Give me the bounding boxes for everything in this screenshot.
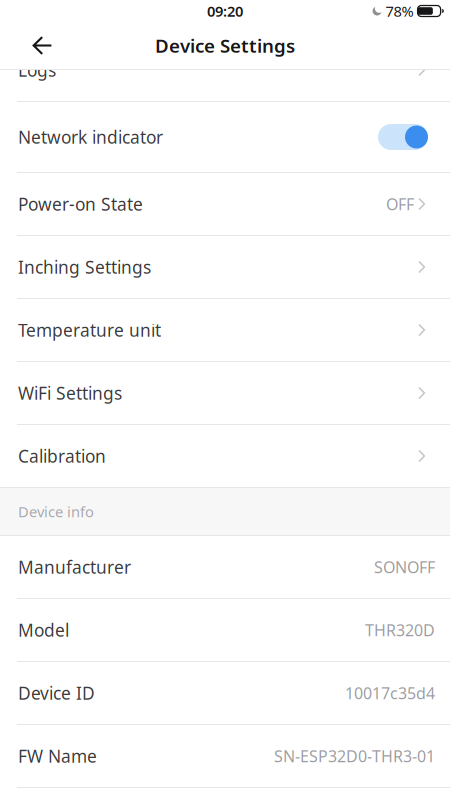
button[interactable]: Inching Settings — [0, 236, 450, 298]
staticText: OFF — [386, 193, 414, 215]
button[interactable]: Temperature unit — [0, 299, 450, 361]
staticText: THR320D — [365, 619, 435, 641]
staticText: Device info — [18, 502, 94, 521]
button[interactable]: Power-on State — [0, 173, 450, 235]
staticText: 78% — [386, 1, 414, 21]
staticText: 10017c35d4 — [345, 682, 435, 704]
staticText: Device ID — [18, 681, 95, 704]
staticText: Network indicator — [18, 125, 163, 148]
staticText: Logs — [18, 58, 56, 81]
staticText: Power-on State — [18, 192, 143, 215]
staticText: WiFi Settings — [18, 381, 122, 404]
staticText: 09:20 — [207, 1, 243, 21]
staticText: Inching Settings — [18, 255, 151, 278]
staticText: Calibration — [18, 444, 106, 467]
button[interactable]: Calibration — [0, 425, 450, 487]
button[interactable]: Logs — [0, 70, 450, 101]
button[interactable]: Network indicator — [378, 124, 428, 150]
staticText: SONOFF — [374, 556, 435, 578]
staticText: SN-ESP32D0-THR3-01 — [274, 745, 435, 767]
button[interactable]: WiFi Settings — [0, 362, 450, 424]
staticText: Temperature unit — [18, 318, 161, 341]
staticText: Manufacturer — [18, 555, 131, 578]
button[interactable]: Back — [19, 23, 65, 67]
staticText: FW Name — [18, 744, 97, 767]
staticText: Device Settings — [155, 33, 295, 58]
staticText: Model — [18, 618, 69, 641]
